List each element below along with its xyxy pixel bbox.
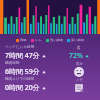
button[interactable]: 浅い睡眠 <box>46 38 63 42</box>
staticText: 0時間 20分 <box>5 83 40 93</box>
staticText: 覚醒 <box>20 38 27 42</box>
staticText: 質 <box>77 46 81 50</box>
staticText: 深い睡眠 <box>71 38 84 42</box>
button[interactable]: 睡眠時間 <box>0 61 100 77</box>
button[interactable]: ベッドにいた時間 <box>0 45 100 61</box>
button[interactable]: 睡眠より下の時間 <box>0 77 100 93</box>
button[interactable]: メモ <box>74 83 84 93</box>
staticText: 浅い睡眠 <box>50 38 63 42</box>
button[interactable]: 覚醒 <box>16 38 27 42</box>
staticText: 72% <box>69 51 83 61</box>
button[interactable]: 睡眠グラフ <box>0 0 100 34</box>
staticText: 気分 <box>76 62 83 66</box>
staticText: メモ <box>76 78 83 82</box>
staticText: ベッドにいた時間 <box>5 45 35 50</box>
button[interactable]: 深い睡眠 <box>67 38 84 42</box>
staticText: 睡眠より下の時間 <box>5 77 35 82</box>
staticText: レム <box>35 38 42 42</box>
staticText: 7時間 47分 <box>5 51 40 61</box>
button[interactable]: レム <box>31 38 42 42</box>
staticText: 睡眠時間 <box>5 61 20 66</box>
button[interactable]: 気分 <box>74 67 84 77</box>
staticText: 6時間 59分 <box>5 67 40 77</box>
